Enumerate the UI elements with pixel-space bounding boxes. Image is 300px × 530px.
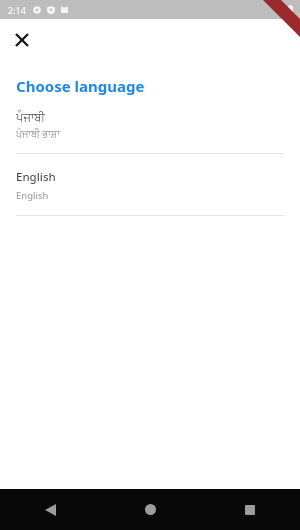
button[interactable]: Back (0, 489, 100, 530)
staticText: 2:14 (8, 4, 26, 16)
button[interactable]: Close (6, 24, 37, 55)
staticText: English (16, 189, 49, 202)
staticText: English (16, 169, 56, 185)
button[interactable]: ਪੰਜਾਬੀ (0, 112, 300, 153)
staticText: Choose language (16, 76, 145, 96)
staticText: ਪੰਜਾਬੀ (16, 112, 45, 123)
staticText: ਪੰਜਾਬੀ ਭਾਸ਼ਾ (16, 127, 60, 140)
button[interactable]: Home (100, 489, 200, 530)
button[interactable]: English (0, 169, 300, 215)
button[interactable]: Recent apps (200, 489, 300, 530)
